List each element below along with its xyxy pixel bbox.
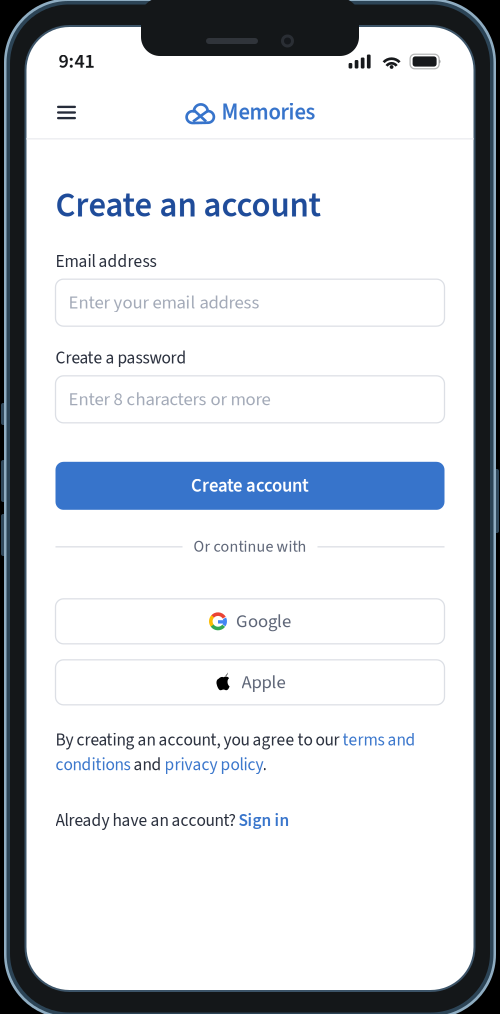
button[interactable]: Apple xyxy=(55,660,444,705)
staticText: Enter 8 characters or more xyxy=(68,386,270,413)
staticText: Create an account xyxy=(55,181,321,230)
button[interactable]: Enter 8 characters or more xyxy=(55,376,444,423)
staticText: Memories xyxy=(221,96,315,129)
button[interactable]: Enter your email address xyxy=(55,279,444,326)
button[interactable]: Create account xyxy=(55,462,444,510)
button[interactable]: Menu xyxy=(48,94,84,130)
staticText: Or continue with xyxy=(193,535,306,558)
staticText: Already have an account? Sign in xyxy=(55,808,289,833)
button[interactable]: Google xyxy=(55,599,444,644)
staticText: Apple xyxy=(241,669,285,696)
staticText: Create a password xyxy=(55,346,186,370)
staticText: Create account xyxy=(191,472,309,499)
staticText: Enter your email address xyxy=(68,289,259,316)
staticText: By creating an account, you agree to our… xyxy=(55,728,415,777)
staticText: Email address xyxy=(55,249,156,274)
staticText: 9:41 xyxy=(58,47,94,76)
button[interactable]: Already have an account? Sign in xyxy=(55,808,289,833)
staticText: Google xyxy=(236,608,291,635)
